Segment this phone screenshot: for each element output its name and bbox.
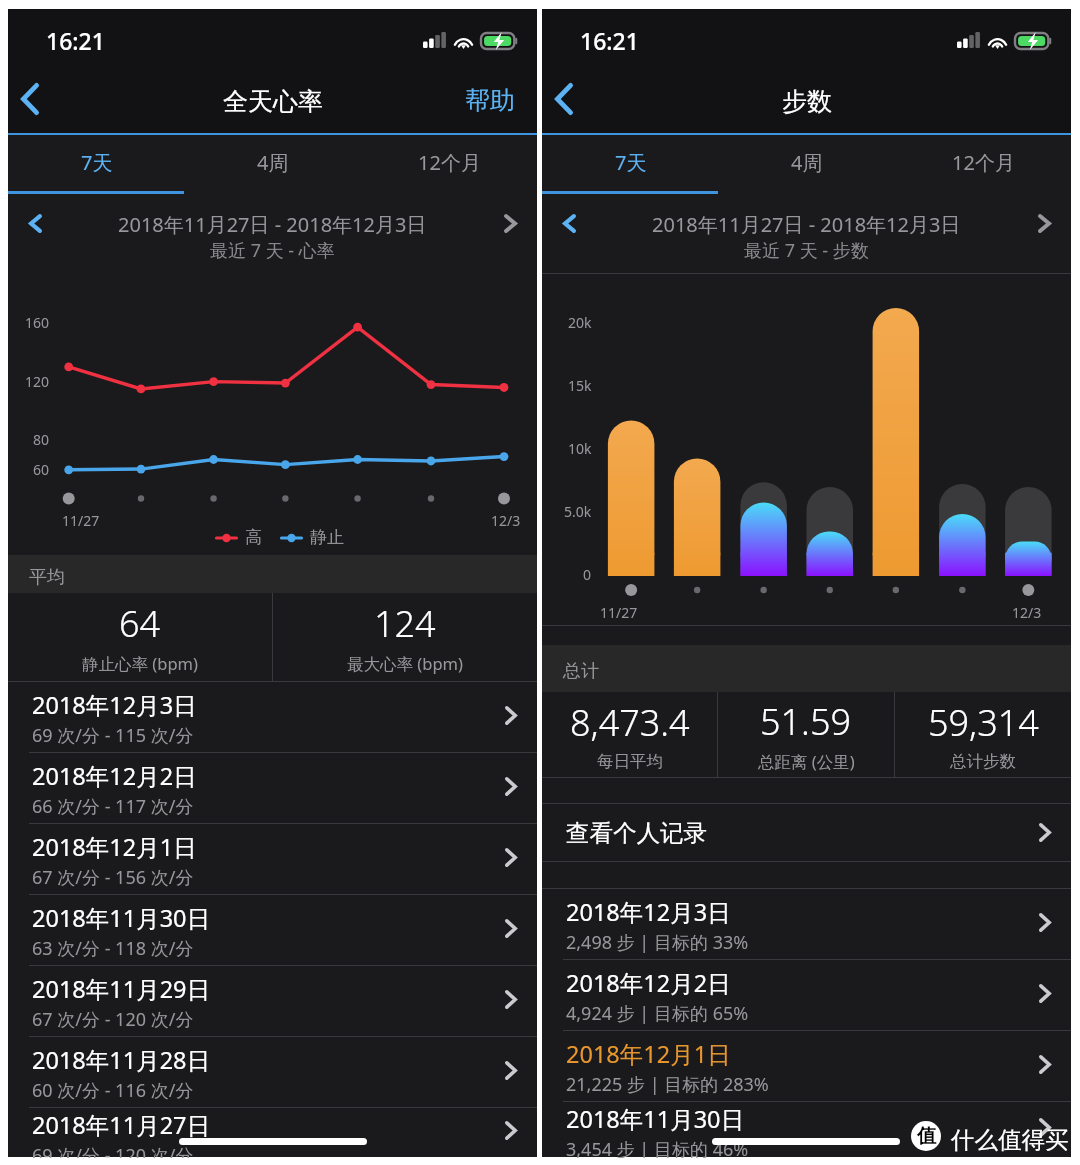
staticText: 4周 (257, 149, 289, 176)
staticText: 总距离 (公里) (758, 750, 855, 773)
staticText: 15k (568, 376, 592, 395)
staticText: 80 (33, 430, 50, 449)
button[interactable]: 2018年11月30日 (542, 1102, 1071, 1157)
staticText: 查看个人记录 (566, 818, 707, 848)
staticText: 60 次/分 - 116 次/分 (32, 1078, 194, 1103)
staticText: 平均 (29, 566, 65, 589)
staticText: 2018年12月1日 (32, 831, 197, 863)
button[interactable]: Back (8, 64, 51, 133)
staticText: 51.59 (760, 697, 852, 746)
staticText: 高 (245, 527, 262, 548)
staticText: 静止心率 (bpm) (82, 652, 198, 675)
staticText: 12个月 (418, 149, 481, 176)
staticText: 59,314 (928, 698, 1039, 747)
button[interactable]: 2018年11月30日 (8, 895, 537, 965)
staticText: 66 次/分 - 117 次/分 (32, 794, 194, 819)
staticText: 7天 (81, 149, 113, 176)
staticText: 2018年12月2日 (566, 967, 731, 999)
staticText: 全天心率 (223, 86, 323, 117)
staticText: 2018年12月1日 (566, 1038, 731, 1070)
staticText: 16:21 (46, 25, 105, 56)
staticText: 2018年12月3日 (32, 689, 197, 721)
staticText: 最近 7 天 - 心率 (210, 238, 335, 263)
staticText: 2018年11月27日 - 2018年12月3日 (652, 211, 961, 238)
staticText: 160 (25, 313, 50, 332)
staticText: 10k (568, 439, 592, 458)
button[interactable]: 2018年11月28日 (8, 1037, 537, 1107)
staticText: 63 次/分 - 118 次/分 (32, 936, 194, 961)
staticText: 12个月 (952, 149, 1015, 176)
staticText: 69 次/分 - 115 次/分 (32, 723, 194, 748)
staticText: 12/3 (491, 511, 521, 530)
staticText: 2018年11月27日 (32, 1109, 211, 1141)
staticText: 4周 (791, 149, 823, 176)
staticText: 2018年11月30日 (566, 1103, 745, 1135)
staticText: 2018年12月3日 (566, 896, 731, 928)
staticText: 67 次/分 - 156 次/分 (32, 865, 194, 890)
staticText: 124 (374, 599, 436, 648)
staticText: 2018年11月29日 (32, 973, 211, 1005)
staticText: 11/27 (600, 603, 638, 622)
staticText: 5.0k (564, 502, 592, 521)
staticText: 20k (568, 313, 592, 332)
staticText: 每日平均 (597, 751, 663, 772)
button[interactable]: Back (542, 64, 585, 133)
button[interactable]: 2018年12月3日 (8, 682, 537, 752)
staticText: 2018年11月30日 (32, 902, 211, 934)
staticText: 帮助 (465, 85, 515, 116)
button[interactable]: 12个月 (361, 135, 537, 194)
staticText: 总计步数 (950, 751, 1016, 772)
button[interactable]: 帮助 (443, 64, 537, 133)
staticText: 2018年12月2日 (32, 760, 197, 792)
staticText: 67 次/分 - 120 次/分 (32, 1007, 194, 1032)
staticText: 69 次/分 - 120 次/分 (32, 1143, 194, 1158)
staticText: 21,225 步 | 目标的 283% (566, 1072, 769, 1097)
staticText: 值 (917, 1124, 936, 1148)
button[interactable]: 2018年12月3日 (542, 889, 1071, 959)
button[interactable]: 2018年12月1日 (542, 1031, 1071, 1101)
staticText: 什么值得买 (951, 1125, 1069, 1155)
button[interactable]: 2018年11月29日 (8, 966, 537, 1036)
button[interactable]: Next week (483, 203, 537, 243)
button[interactable]: 2018年12月2日 (542, 960, 1071, 1030)
staticText: 静止 (310, 527, 344, 548)
button[interactable]: 4周 (185, 135, 361, 194)
staticText: 8,473.4 (570, 698, 690, 747)
button[interactable]: 2018年11月27日 (8, 1108, 537, 1157)
staticText: 最近 7 天 - 步数 (744, 238, 869, 263)
staticText: 总计 (563, 660, 599, 683)
button[interactable]: 查看个人记录 (542, 804, 1071, 861)
staticText: 2,498 步 | 目标的 33% (566, 930, 749, 955)
staticText: 7天 (615, 149, 647, 176)
button[interactable]: Previous week (542, 203, 596, 243)
staticText: 2018年11月27日 - 2018年12月3日 (118, 211, 427, 238)
staticText: 步数 (782, 86, 832, 117)
staticText: 2018年11月28日 (32, 1044, 211, 1076)
button[interactable]: 2018年12月1日 (8, 824, 537, 894)
staticText: 最大心率 (bpm) (347, 652, 463, 675)
staticText: 11/27 (62, 511, 100, 530)
staticText: 64 (119, 599, 161, 648)
staticText: 3,454 步 | 目标的 46% (566, 1137, 749, 1158)
button[interactable]: 4周 (719, 135, 895, 194)
button[interactable]: 2018年12月2日 (8, 753, 537, 823)
staticText: 60 (33, 460, 50, 479)
staticText: 12/3 (1012, 603, 1042, 622)
button[interactable]: 7天 (542, 135, 719, 194)
button[interactable]: 12个月 (895, 135, 1071, 194)
button[interactable]: 7天 (8, 135, 185, 194)
button[interactable]: Previous week (8, 203, 62, 243)
staticText: 120 (25, 372, 50, 391)
button[interactable]: Next week (1017, 203, 1071, 243)
staticText: 16:21 (580, 25, 639, 56)
staticText: 4,924 步 | 目标的 65% (566, 1001, 749, 1026)
staticText: 0 (583, 565, 592, 584)
